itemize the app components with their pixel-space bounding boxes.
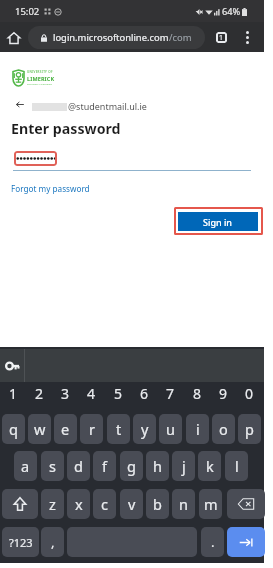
button[interactable]: u [159, 414, 182, 444]
button[interactable]: Forgot my password [11, 183, 90, 194]
staticText: 15:02 [15, 5, 40, 18]
button[interactable] [14, 151, 57, 166]
button[interactable]: l [225, 451, 248, 481]
button[interactable]: Home [3, 27, 24, 48]
staticText: UNIVERSITY OF [27, 70, 53, 74]
button[interactable]: Backspace [227, 489, 265, 519]
button[interactable]: 2 [28, 382, 51, 405]
staticText: i [196, 419, 200, 439]
staticText: a [21, 456, 30, 476]
staticText: y [141, 419, 149, 439]
button[interactable]: z [41, 489, 64, 519]
button[interactable]: b [146, 489, 169, 519]
button[interactable]: p [238, 414, 261, 444]
staticText: t [116, 419, 122, 439]
staticText: Enter password [11, 119, 121, 138]
button[interactable]: w [28, 414, 51, 444]
button[interactable]: More options [237, 27, 257, 47]
staticText: p [245, 419, 254, 439]
staticText: 6 [140, 384, 149, 403]
staticText: f [102, 456, 107, 476]
button[interactable]: 4 [80, 382, 103, 405]
staticText: 0 [245, 384, 254, 403]
staticText: r [89, 419, 95, 439]
staticText: c [101, 494, 108, 514]
button[interactable]: m [199, 489, 222, 519]
button[interactable]: Enter [227, 527, 265, 557]
button[interactable]: 5 [107, 382, 130, 405]
button[interactable]: Back [14, 100, 25, 109]
staticText: @studentmail.ul.ie [68, 100, 147, 112]
staticText: x [75, 494, 83, 514]
staticText: e [61, 419, 70, 439]
staticText: login.microsoftonline.com [53, 31, 169, 44]
button[interactable]: q [2, 414, 25, 444]
button[interactable]: login.microsoftonline.com [28, 26, 205, 49]
staticText: LIMERICK [27, 75, 55, 82]
staticText: l [235, 456, 239, 476]
button[interactable]: ?123 [2, 527, 39, 557]
staticText: g [127, 456, 136, 476]
button[interactable]: g [120, 451, 143, 481]
staticText: 8 [193, 384, 202, 403]
staticText: z [49, 494, 56, 514]
button[interactable]: 6 [133, 382, 156, 405]
button[interactable]: c [93, 489, 116, 519]
button[interactable]: r [80, 414, 103, 444]
button[interactable]: Sign in [178, 212, 258, 231]
staticText: q [9, 419, 18, 439]
staticText: u [166, 419, 175, 439]
staticText: 1 [219, 33, 224, 43]
staticText: 5 [114, 384, 123, 403]
button[interactable]: o [212, 414, 235, 444]
button[interactable]: Shift [2, 489, 38, 519]
button[interactable]: t [107, 414, 130, 444]
button[interactable]: Tabs [211, 27, 231, 47]
button[interactable]: d [67, 451, 90, 481]
staticText: , [51, 533, 55, 551]
staticText: 1 [9, 384, 18, 403]
staticText: 3 [61, 384, 70, 403]
button[interactable]: a [14, 451, 37, 481]
staticText: 4 [87, 384, 96, 403]
button[interactable]: 0 [238, 382, 261, 405]
staticText: m [204, 494, 218, 514]
staticText: w [34, 419, 46, 439]
staticText: ?123 [9, 535, 33, 550]
staticText: 64% [222, 5, 241, 18]
button[interactable]: y [133, 414, 156, 444]
staticText: v [128, 494, 136, 514]
button[interactable]: Saved passwords [0, 349, 25, 382]
staticText: OLLSCOIL LUIMNIGH [27, 83, 53, 86]
staticText: Sign in [203, 216, 233, 228]
button[interactable]: 9 [212, 382, 235, 405]
button[interactable]: v [120, 489, 143, 519]
button[interactable]: . [201, 527, 224, 557]
button[interactable]: h [146, 451, 169, 481]
button[interactable]: s [41, 451, 64, 481]
button[interactable]: , [41, 527, 64, 557]
button[interactable]: 7 [159, 382, 182, 405]
button[interactable]: e [54, 414, 77, 444]
staticText: h [153, 456, 162, 476]
staticText: /com [169, 31, 192, 44]
staticText: b [153, 494, 162, 514]
button[interactable]: n [172, 489, 195, 519]
button[interactable]: 8 [186, 382, 209, 405]
staticText: 2 [35, 384, 44, 403]
button[interactable]: j [172, 451, 195, 481]
staticText: j [182, 456, 186, 476]
button[interactable]: 1 [2, 382, 25, 405]
button[interactable]: x [67, 489, 90, 519]
staticText: o [219, 419, 228, 439]
button[interactable]: i [186, 414, 209, 444]
staticText: . [211, 533, 215, 551]
staticText: 7 [166, 384, 175, 403]
staticText: s [49, 456, 56, 476]
button[interactable]: 3 [54, 382, 77, 405]
staticText: 9 [219, 384, 228, 403]
button[interactable]: f [93, 451, 116, 481]
staticText: d [74, 456, 83, 476]
button[interactable]: k [198, 451, 221, 481]
